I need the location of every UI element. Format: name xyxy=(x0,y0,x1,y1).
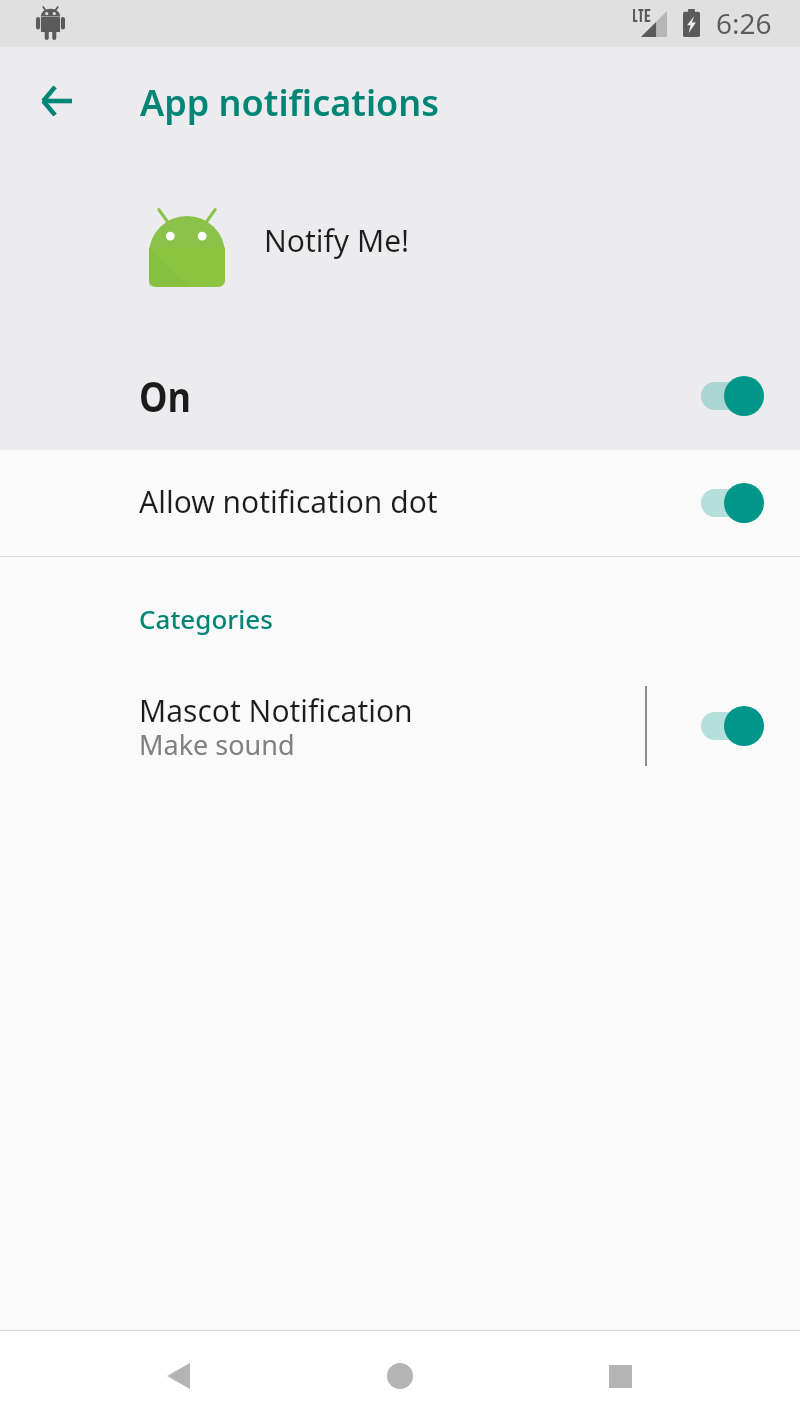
button[interactable]: Allow notification dot xyxy=(701,481,763,525)
staticText: 6:26 xyxy=(716,4,772,42)
button[interactable]: Toggle notifications xyxy=(701,374,763,418)
staticText: Make sound xyxy=(139,726,295,763)
button[interactable]: Allow notification dot xyxy=(0,449,800,556)
button[interactable]: Recent apps xyxy=(575,1331,665,1421)
staticText: On xyxy=(139,367,191,424)
button[interactable]: Mascot Notification xyxy=(701,704,763,748)
staticText: Mascot Notification xyxy=(139,690,413,731)
staticText: Allow notification dot xyxy=(139,481,438,522)
button[interactable]: Navigate up xyxy=(8,53,103,148)
staticText: Notify Me! xyxy=(264,220,410,261)
button[interactable]: Back xyxy=(133,1331,223,1421)
staticText: App notifications xyxy=(140,78,440,127)
button[interactable]: Home xyxy=(355,1331,445,1421)
staticText: Categories xyxy=(139,601,273,636)
button[interactable]: Mascot Notification xyxy=(0,671,800,781)
